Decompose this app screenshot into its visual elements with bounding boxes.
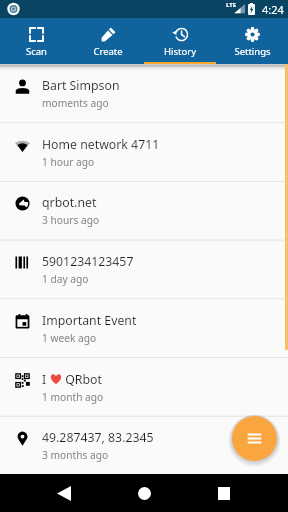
button[interactable]: qrbot.net [0,181,288,240]
staticText: 1 month ago [42,390,104,404]
staticText: Settings [234,45,271,58]
staticText: History [164,45,196,58]
staticText: 49.287437, 83.2345 [42,429,154,446]
button[interactable]: Menu [232,416,277,461]
button[interactable]: Settings [216,18,288,64]
staticText: Create [93,45,123,58]
staticText: 1 day ago [42,272,89,286]
staticText: 3 months ago [42,448,109,462]
staticText: qrbot.net [42,194,97,211]
staticText: 4:24 [262,2,284,17]
button[interactable]: History [144,18,216,64]
button[interactable]: Important Event [0,299,288,358]
button[interactable]: Home [124,474,164,512]
staticText: 5901234123457 [42,253,134,270]
staticText: Home network 4711 [42,136,160,153]
button[interactable]: 5901234123457 [0,240,288,299]
staticText: Scan [26,45,47,58]
staticText: 1 hour ago [42,155,95,169]
staticText: Important Event [42,312,137,329]
button[interactable]: I [0,358,288,417]
button[interactable]: Bart Simpson [0,64,288,123]
staticText: QRbot [62,371,102,388]
button[interactable]: Scan [0,18,72,64]
button[interactable]: Back [44,474,84,512]
button[interactable]: Recents [204,474,244,512]
button[interactable]: 49.287437, 83.2345 [0,416,288,475]
button[interactable]: Home network 4711 [0,123,288,182]
staticText: 1 week ago [42,331,97,345]
staticText: I [42,371,50,388]
button[interactable]: Create [72,18,144,64]
staticText: Bart Simpson [42,77,120,94]
staticText: 3 hours ago [42,213,100,227]
staticText: moments ago [42,96,109,110]
staticText: LTE [226,1,237,9]
